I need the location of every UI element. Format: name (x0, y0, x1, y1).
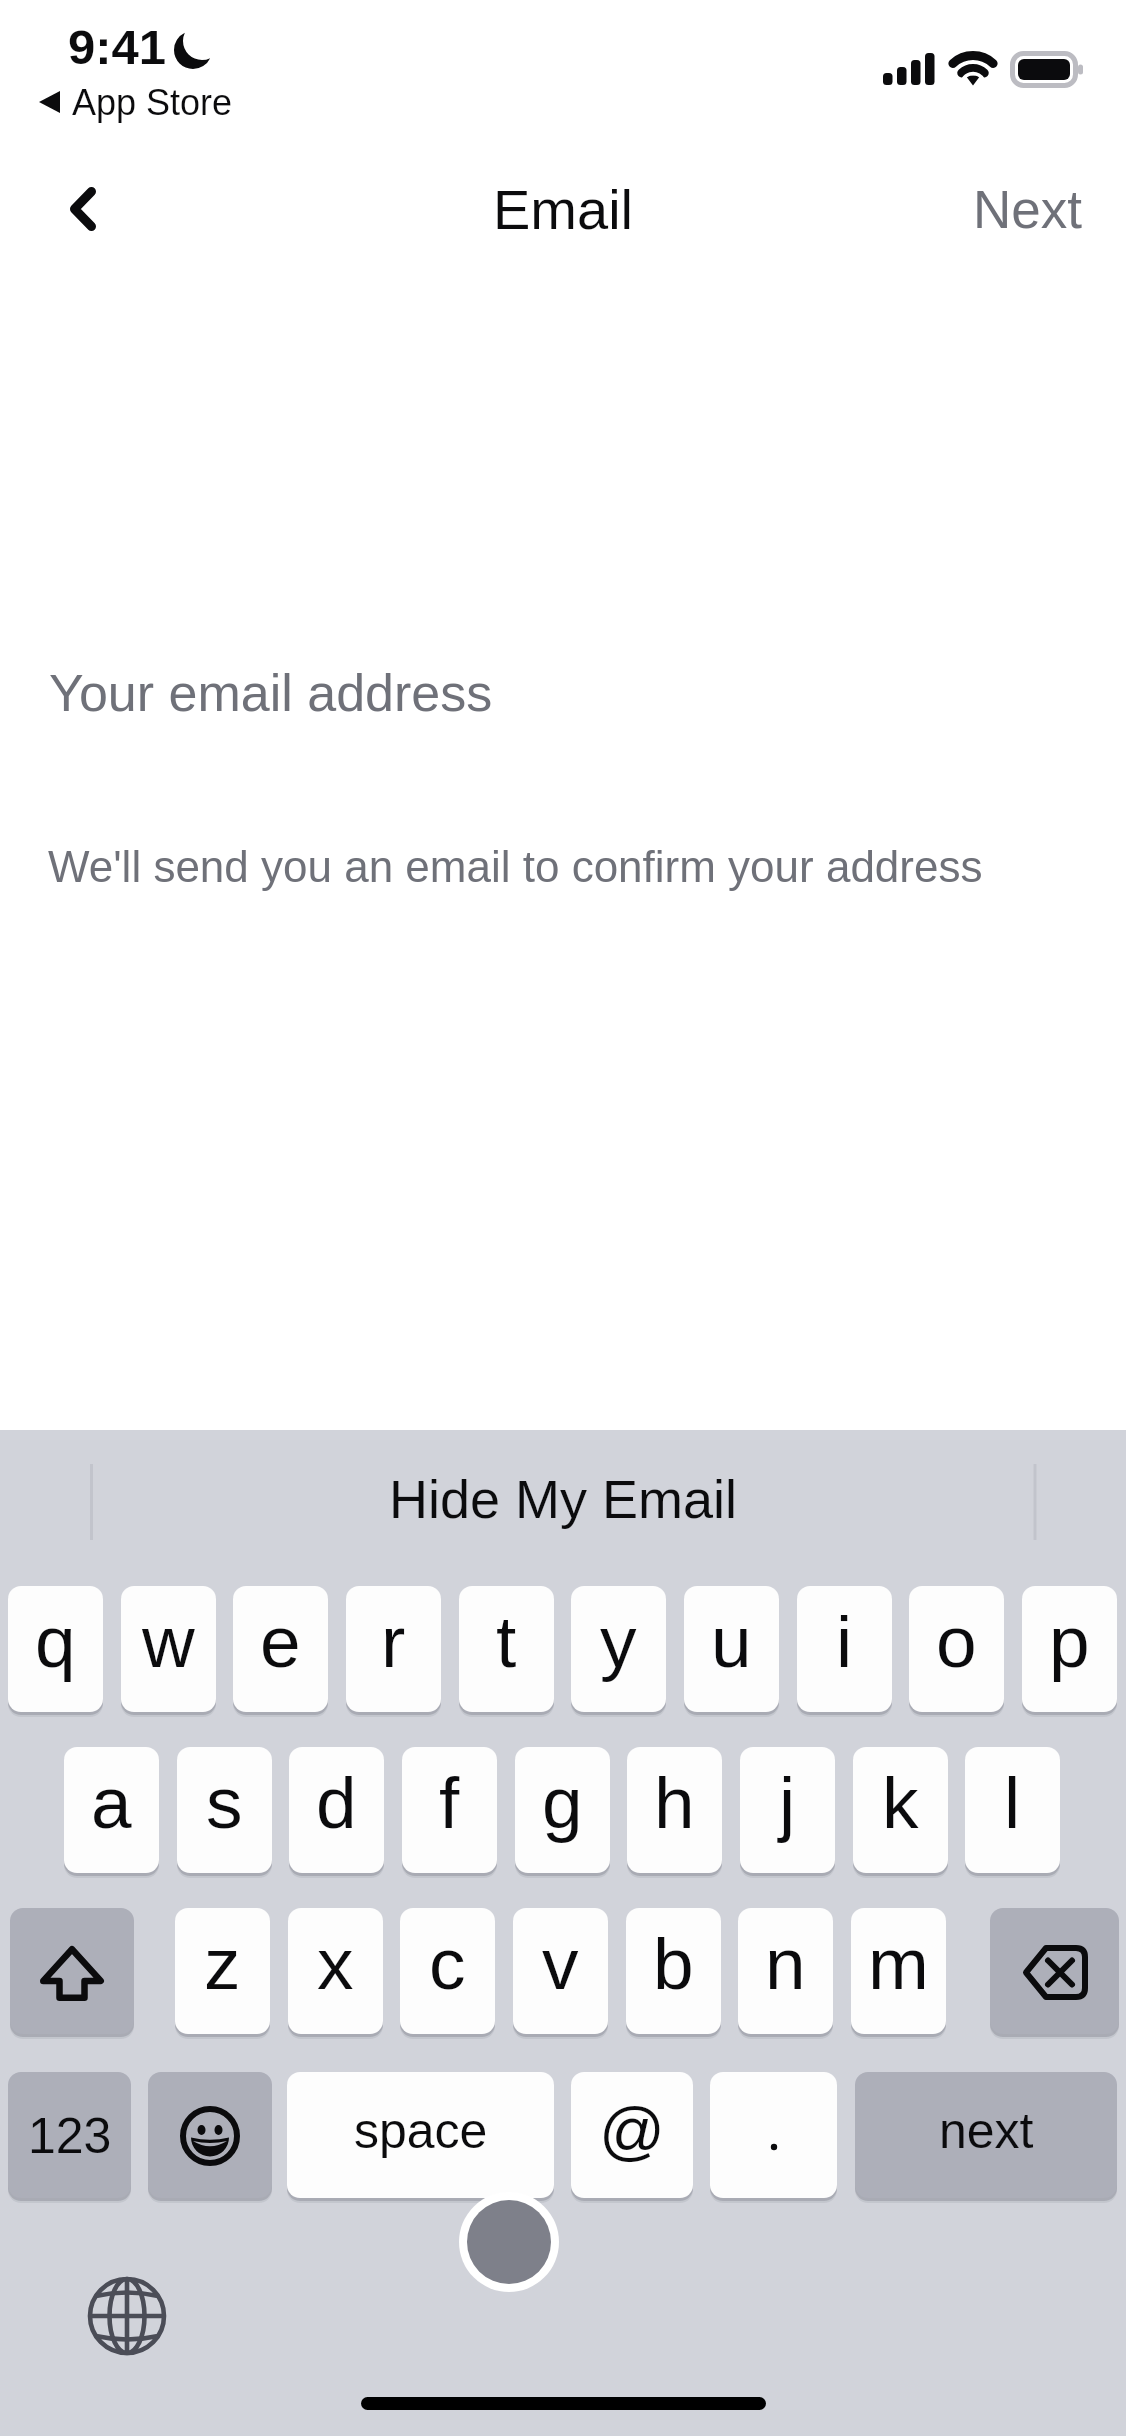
button[interactable]: l (965, 1747, 1060, 1873)
button[interactable]: y (571, 1586, 666, 1712)
staticText: i (836, 1601, 853, 1683)
button[interactable]: g (515, 1747, 610, 1873)
staticText: k (882, 1762, 919, 1844)
button[interactable]: i (797, 1586, 892, 1712)
staticText: v (542, 1923, 579, 2005)
staticText: next (939, 2103, 1034, 2159)
button[interactable]: Back (0, 159, 165, 259)
button[interactable]: f (402, 1747, 497, 1873)
button[interactable]: Shift (10, 1908, 134, 2034)
button[interactable]: k (853, 1747, 948, 1873)
staticText: @ (599, 2094, 665, 2167)
staticText: b (653, 1923, 694, 2005)
button[interactable]: h (627, 1747, 722, 1873)
staticText: z (204, 1923, 241, 2005)
staticText: e (260, 1601, 301, 1683)
button[interactable]: z (175, 1908, 270, 2034)
staticText: q (35, 1601, 76, 1683)
staticText: g (542, 1762, 583, 1844)
button[interactable]: Emoji (148, 2072, 272, 2198)
button[interactable]: Hide My Email (389, 1469, 738, 1529)
button[interactable]: e (233, 1586, 328, 1712)
button[interactable]: t (459, 1586, 554, 1712)
button[interactable]: x (288, 1908, 383, 2034)
button[interactable]: Next (973, 159, 1082, 259)
button[interactable]: App Store (36, 81, 233, 123)
staticText: d (316, 1762, 357, 1844)
staticText: m (868, 1923, 929, 2005)
staticText: Your email address (49, 664, 493, 722)
staticText: Next (973, 180, 1082, 239)
button[interactable]: o (909, 1586, 1004, 1712)
button[interactable]: u (684, 1586, 779, 1712)
button[interactable]: a (64, 1747, 159, 1873)
staticText: a (91, 1762, 132, 1844)
button[interactable]: q (8, 1586, 103, 1712)
staticText: x (317, 1923, 354, 2005)
staticText: Hide My Email (389, 1469, 738, 1529)
button[interactable]: b (626, 1908, 721, 2034)
staticText: j (779, 1762, 796, 1844)
button[interactable]: Backspace (990, 1908, 1119, 2034)
button[interactable]: Period (710, 2072, 837, 2198)
staticText: u (711, 1601, 752, 1683)
button[interactable]: w (121, 1586, 216, 1712)
button[interactable]: j (740, 1747, 835, 1873)
button[interactable]: 123 (8, 2072, 131, 2198)
staticText: t (496, 1601, 517, 1683)
staticText: space (354, 2103, 488, 2159)
button[interactable]: p (1022, 1586, 1117, 1712)
button[interactable]: next (855, 2072, 1117, 2198)
staticText: App Store (72, 82, 233, 122)
button[interactable]: d (289, 1747, 384, 1873)
button[interactable]: @ (571, 2072, 693, 2198)
staticText: w (142, 1601, 195, 1683)
staticText: h (654, 1762, 695, 1844)
button[interactable]: r (346, 1586, 441, 1712)
button[interactable]: Switch keyboard (87, 2276, 167, 2356)
button[interactable]: m (851, 1908, 946, 2034)
button[interactable]: s (177, 1747, 272, 1873)
button[interactable]: n (738, 1908, 833, 2034)
staticText: We'll send you an email to confirm your … (48, 842, 983, 891)
staticText: 123 (28, 2108, 112, 2164)
staticText: y (600, 1601, 637, 1683)
staticText: f (439, 1762, 460, 1844)
staticText: o (936, 1601, 977, 1683)
staticText: p (1049, 1601, 1090, 1683)
button[interactable]: v (513, 1908, 608, 2034)
staticText: c (429, 1923, 466, 2005)
staticText: Email (493, 178, 634, 241)
button[interactable]: space (287, 2072, 554, 2198)
staticText: 9:41 (68, 20, 167, 75)
staticText: r (381, 1601, 406, 1683)
staticText: s (206, 1762, 243, 1844)
staticText: n (765, 1923, 806, 2005)
button[interactable]: c (400, 1908, 495, 2034)
staticText: l (1004, 1762, 1021, 1844)
